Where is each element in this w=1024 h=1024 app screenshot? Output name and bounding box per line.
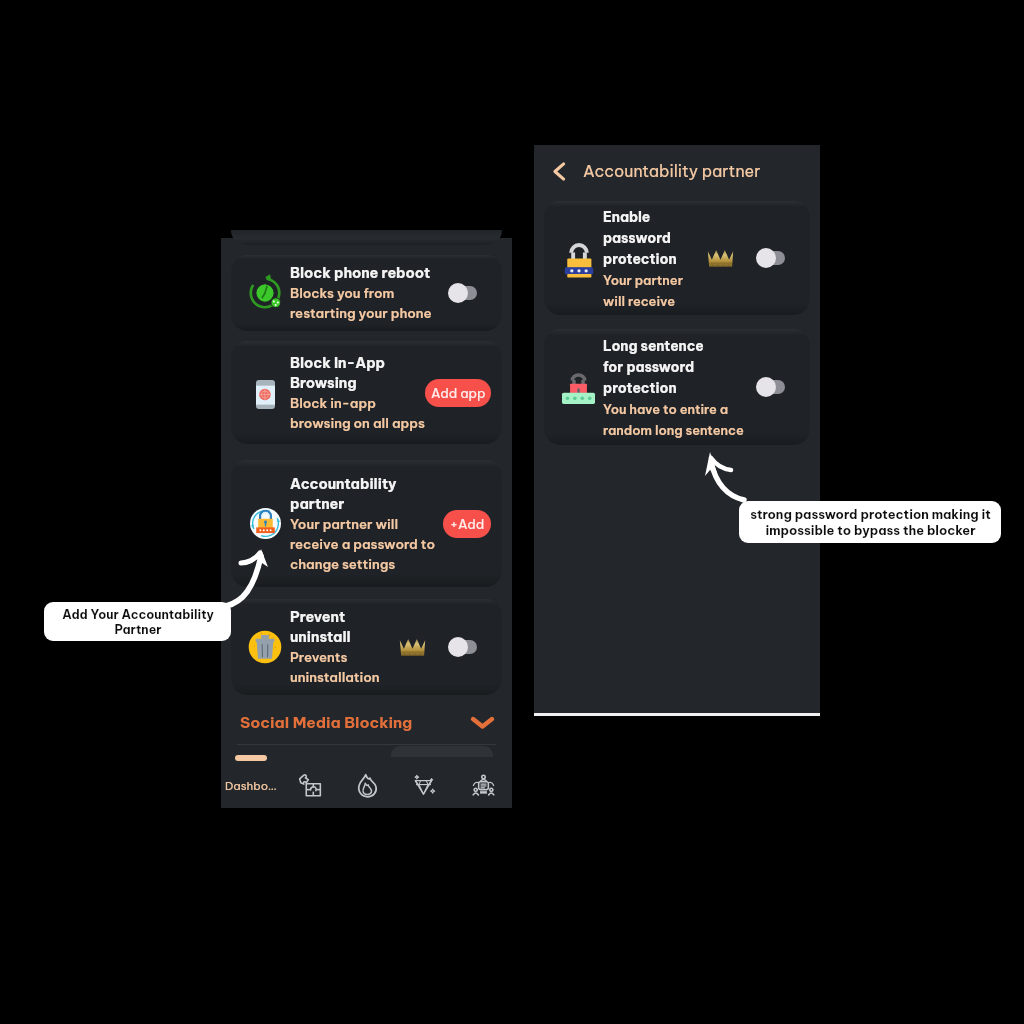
button[interactable]: Block In-App bbox=[231, 341, 502, 444]
staticText: random long sentence bbox=[603, 422, 744, 438]
staticText: Long sentence bbox=[603, 337, 704, 354]
button[interactable]: Accountability bbox=[231, 460, 502, 587]
button[interactable]: Toggle bbox=[756, 376, 799, 398]
staticText: Dashbo… bbox=[225, 778, 277, 793]
staticText: partner bbox=[290, 495, 345, 513]
staticText: Partner bbox=[114, 622, 162, 637]
staticText: strong password protection making it bbox=[750, 506, 991, 522]
button[interactable]: Toggle bbox=[448, 636, 491, 658]
staticText: uninstallation bbox=[290, 669, 380, 686]
staticText: uninstall bbox=[290, 628, 351, 646]
button[interactable]: Toggle bbox=[756, 247, 799, 269]
staticText: password bbox=[603, 229, 671, 246]
staticText: will receive bbox=[603, 293, 676, 309]
staticText: Block phone reboot bbox=[290, 264, 431, 282]
staticText: Enable bbox=[603, 208, 651, 225]
staticText: Prevents bbox=[290, 649, 348, 666]
staticText: protection bbox=[603, 379, 677, 396]
button[interactable]: Community bbox=[454, 764, 512, 806]
staticText: Prevent bbox=[290, 608, 346, 626]
button[interactable]: Long sentence bbox=[544, 329, 810, 445]
button[interactable]: Back bbox=[548, 150, 761, 192]
staticText: Accountability bbox=[290, 475, 397, 493]
staticText: for password bbox=[603, 358, 695, 375]
button[interactable]: Prevent bbox=[231, 599, 502, 695]
other: Back bbox=[548, 160, 571, 183]
staticText: browsing on all apps bbox=[290, 415, 425, 432]
staticText: Block in-app bbox=[290, 395, 376, 412]
button[interactable]: Social Media Blocking bbox=[221, 703, 512, 741]
staticText: Social Media Blocking bbox=[240, 713, 413, 732]
staticText: Add app bbox=[431, 385, 486, 401]
button[interactable]: Block phone reboot bbox=[231, 255, 502, 331]
button[interactable]: Enable bbox=[544, 201, 810, 315]
staticText: Your partner bbox=[603, 272, 684, 288]
button[interactable]: Dashbo… bbox=[221, 764, 281, 806]
button[interactable]: Add app bbox=[425, 379, 491, 407]
button[interactable]: +Add bbox=[443, 510, 491, 538]
staticText: +Add bbox=[450, 516, 485, 532]
staticText: You have to entire a bbox=[603, 401, 729, 417]
staticText: Blocks you from bbox=[290, 285, 395, 302]
staticText: receive a password to bbox=[290, 536, 436, 553]
button[interactable]: Premium bbox=[396, 764, 454, 806]
button[interactable]: Toggle bbox=[448, 282, 491, 304]
staticText: change settings bbox=[290, 556, 396, 573]
staticText: protection bbox=[603, 250, 677, 267]
staticText: restarting your phone bbox=[290, 305, 432, 322]
button[interactable]: Block apps bbox=[281, 764, 338, 806]
other: Expand section bbox=[470, 710, 495, 735]
button[interactable]: Streak bbox=[338, 764, 396, 806]
staticText: Accountability partner bbox=[583, 161, 761, 181]
staticText: Block In-App bbox=[290, 354, 385, 372]
staticText: Browsing bbox=[290, 374, 357, 392]
staticText: Your partner will bbox=[290, 516, 399, 533]
staticText: impossible to bypass the blocker bbox=[765, 522, 976, 538]
staticText: Add Your Accountability bbox=[62, 607, 214, 622]
